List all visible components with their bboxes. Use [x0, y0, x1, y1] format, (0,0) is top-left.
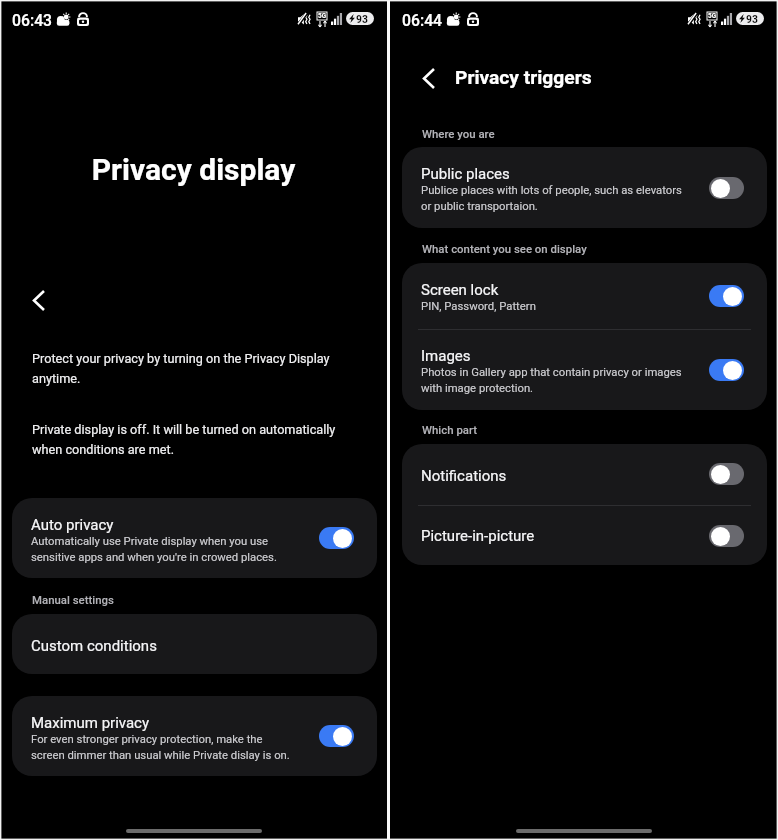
- staticText: Photos in Gallery app that contain priva…: [421, 366, 684, 394]
- staticText: 5G: [708, 12, 717, 20]
- staticText: Screen lock: [421, 281, 499, 299]
- button[interactable]: Notifications: [402, 444, 767, 505]
- staticText: Images: [421, 347, 471, 365]
- button[interactable]: Toggle off: [709, 525, 744, 547]
- staticText: Public places: [421, 165, 510, 183]
- staticText: For even stronger privacy protection, ma…: [31, 733, 294, 761]
- button[interactable]: Toggle off: [709, 463, 744, 485]
- staticText: Maximum privacy: [31, 714, 150, 732]
- staticText: Notifications: [421, 467, 507, 485]
- staticText: 93: [356, 13, 368, 25]
- button[interactable]: Public places: [402, 147, 767, 228]
- staticText: Privacy display: [0, 152, 387, 187]
- button[interactable]: Maximum privacy: [12, 696, 377, 776]
- staticText: Manual settings: [32, 593, 114, 606]
- staticText: Custom conditions: [31, 637, 157, 655]
- staticText: Picture-in-picture: [421, 527, 535, 545]
- button[interactable]: Toggle on: [319, 725, 354, 747]
- button[interactable]: Auto privacy: [12, 498, 377, 578]
- button[interactable]: Images: [402, 329, 767, 410]
- staticText: 5G: [318, 12, 327, 20]
- button[interactable]: Custom conditions: [12, 614, 377, 674]
- staticText: Auto privacy: [31, 516, 114, 534]
- staticText: Protect your privacy by turning on the P…: [32, 351, 352, 386]
- staticText: PIN, Password, Pattern: [421, 300, 684, 313]
- button[interactable]: Back: [414, 61, 444, 95]
- button[interactable]: Toggle on: [709, 359, 744, 381]
- staticText: 06:44: [402, 11, 443, 30]
- staticText: Automatically use Private display when y…: [31, 535, 294, 563]
- staticText: What content you see on display: [422, 242, 587, 255]
- staticText: Privacy triggers: [455, 66, 592, 89]
- staticText: 93: [746, 13, 758, 25]
- button[interactable]: Back: [24, 284, 54, 316]
- staticText: Which part: [422, 423, 478, 436]
- button[interactable]: Toggle on: [709, 285, 744, 307]
- button[interactable]: Picture-in-picture: [402, 505, 767, 565]
- button[interactable]: Toggle on: [319, 527, 354, 549]
- staticText: Private display is off. It will be turne…: [32, 422, 352, 457]
- button[interactable]: Screen lock: [402, 263, 767, 329]
- staticText: Publice places with lots of people, such…: [421, 184, 684, 212]
- staticText: 06:43: [12, 11, 53, 30]
- staticText: Where you are: [422, 127, 495, 140]
- button[interactable]: Toggle off: [709, 177, 744, 199]
